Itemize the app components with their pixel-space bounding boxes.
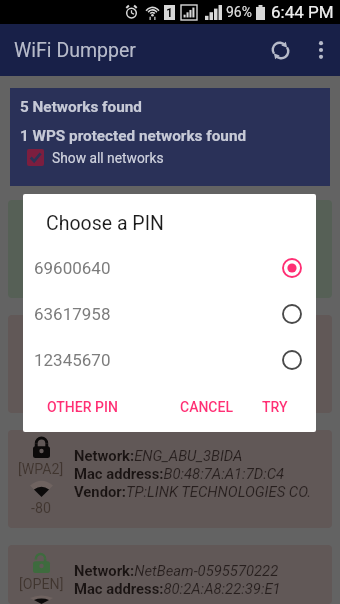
staticText: Vendor:TP:LINK TECHNOLOGIES CO. — [74, 483, 312, 500]
button[interactable]: [OPEN] — [8, 545, 332, 604]
staticText: Mac address:B0:48:7A:A1:7D:C4 — [74, 465, 285, 482]
staticText: Mac address:80:2A:A8:22:39:E1 — [74, 580, 281, 597]
button[interactable]: 63617958 — [23, 291, 316, 337]
staticText: 63617958 — [34, 304, 111, 324]
staticText: CANCEL — [180, 399, 233, 415]
staticText: OTHER PIN — [47, 399, 118, 415]
staticText: Network:ENG_ABU_3BIDA — [74, 447, 243, 464]
staticText: Show all networks — [52, 150, 164, 166]
staticText: 6:44 PM — [271, 2, 334, 22]
staticText: 1 — [166, 6, 173, 20]
button[interactable]: OTHER PIN — [41, 394, 124, 420]
button[interactable]: 12345670 — [23, 337, 316, 383]
button[interactable]: More options — [302, 28, 340, 72]
button[interactable]: TRY — [256, 394, 294, 420]
staticText: 12345670 — [34, 350, 111, 370]
button[interactable]: CANCEL — [174, 394, 239, 420]
staticText: WiFi Dumpper — [14, 39, 136, 62]
staticText: Choose a PIN — [46, 212, 164, 235]
staticText: 69600640 — [34, 258, 111, 278]
staticText: [OPEN] — [19, 576, 64, 593]
staticText: 96% — [226, 4, 252, 20]
staticText: 1 WPS protected networks found — [20, 127, 247, 145]
staticText: 5 Networks found — [20, 98, 142, 116]
button[interactable]: [WPA2] — [8, 430, 332, 528]
staticText: TRY — [262, 399, 288, 415]
button[interactable] — [8, 200, 332, 298]
button[interactable]: Show all networks — [10, 149, 164, 166]
button[interactable] — [8, 315, 332, 413]
staticText: -80 — [31, 500, 51, 517]
staticText: [WPA2] — [18, 461, 64, 478]
staticText: Network:NetBeam-0595570222 — [74, 562, 279, 579]
button[interactable]: 69600640 — [23, 245, 316, 291]
button[interactable]: Refresh — [258, 28, 302, 72]
